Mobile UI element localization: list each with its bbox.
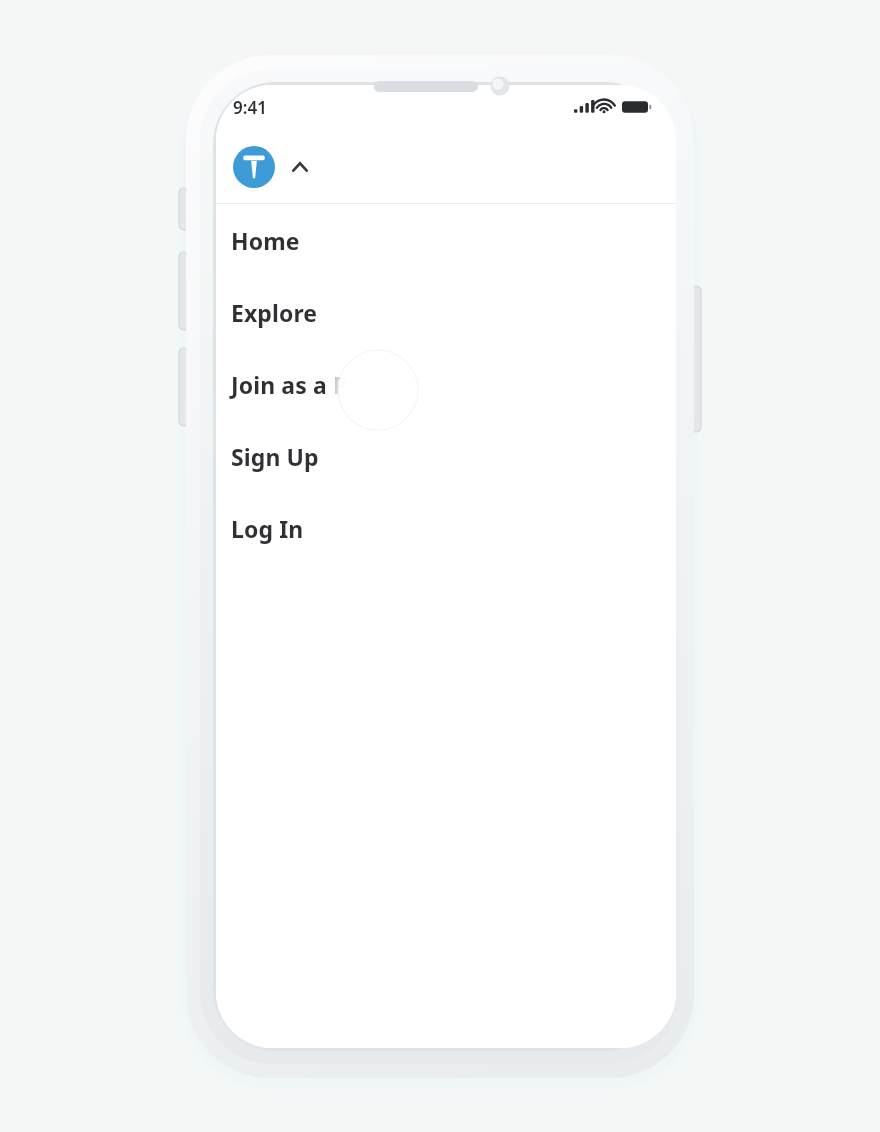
- staticText: 9:41: [233, 96, 267, 119]
- staticText: Home: [231, 225, 300, 256]
- button[interactable]: Collapse menu: [287, 154, 313, 180]
- button[interactable]: Log In: [216, 492, 676, 564]
- button[interactable]: Explore: [216, 276, 676, 348]
- button[interactable]: Thumbtack home: [233, 146, 275, 188]
- staticText: Sign Up: [231, 441, 319, 472]
- button[interactable]: Join as a: [216, 348, 676, 420]
- staticText: Join as a: [231, 369, 333, 400]
- staticText: P: [333, 369, 348, 400]
- button[interactable]: Sign Up: [216, 420, 676, 492]
- staticText: Log In: [231, 513, 304, 544]
- button[interactable]: Home: [216, 204, 676, 276]
- staticText: Explore: [231, 297, 318, 328]
